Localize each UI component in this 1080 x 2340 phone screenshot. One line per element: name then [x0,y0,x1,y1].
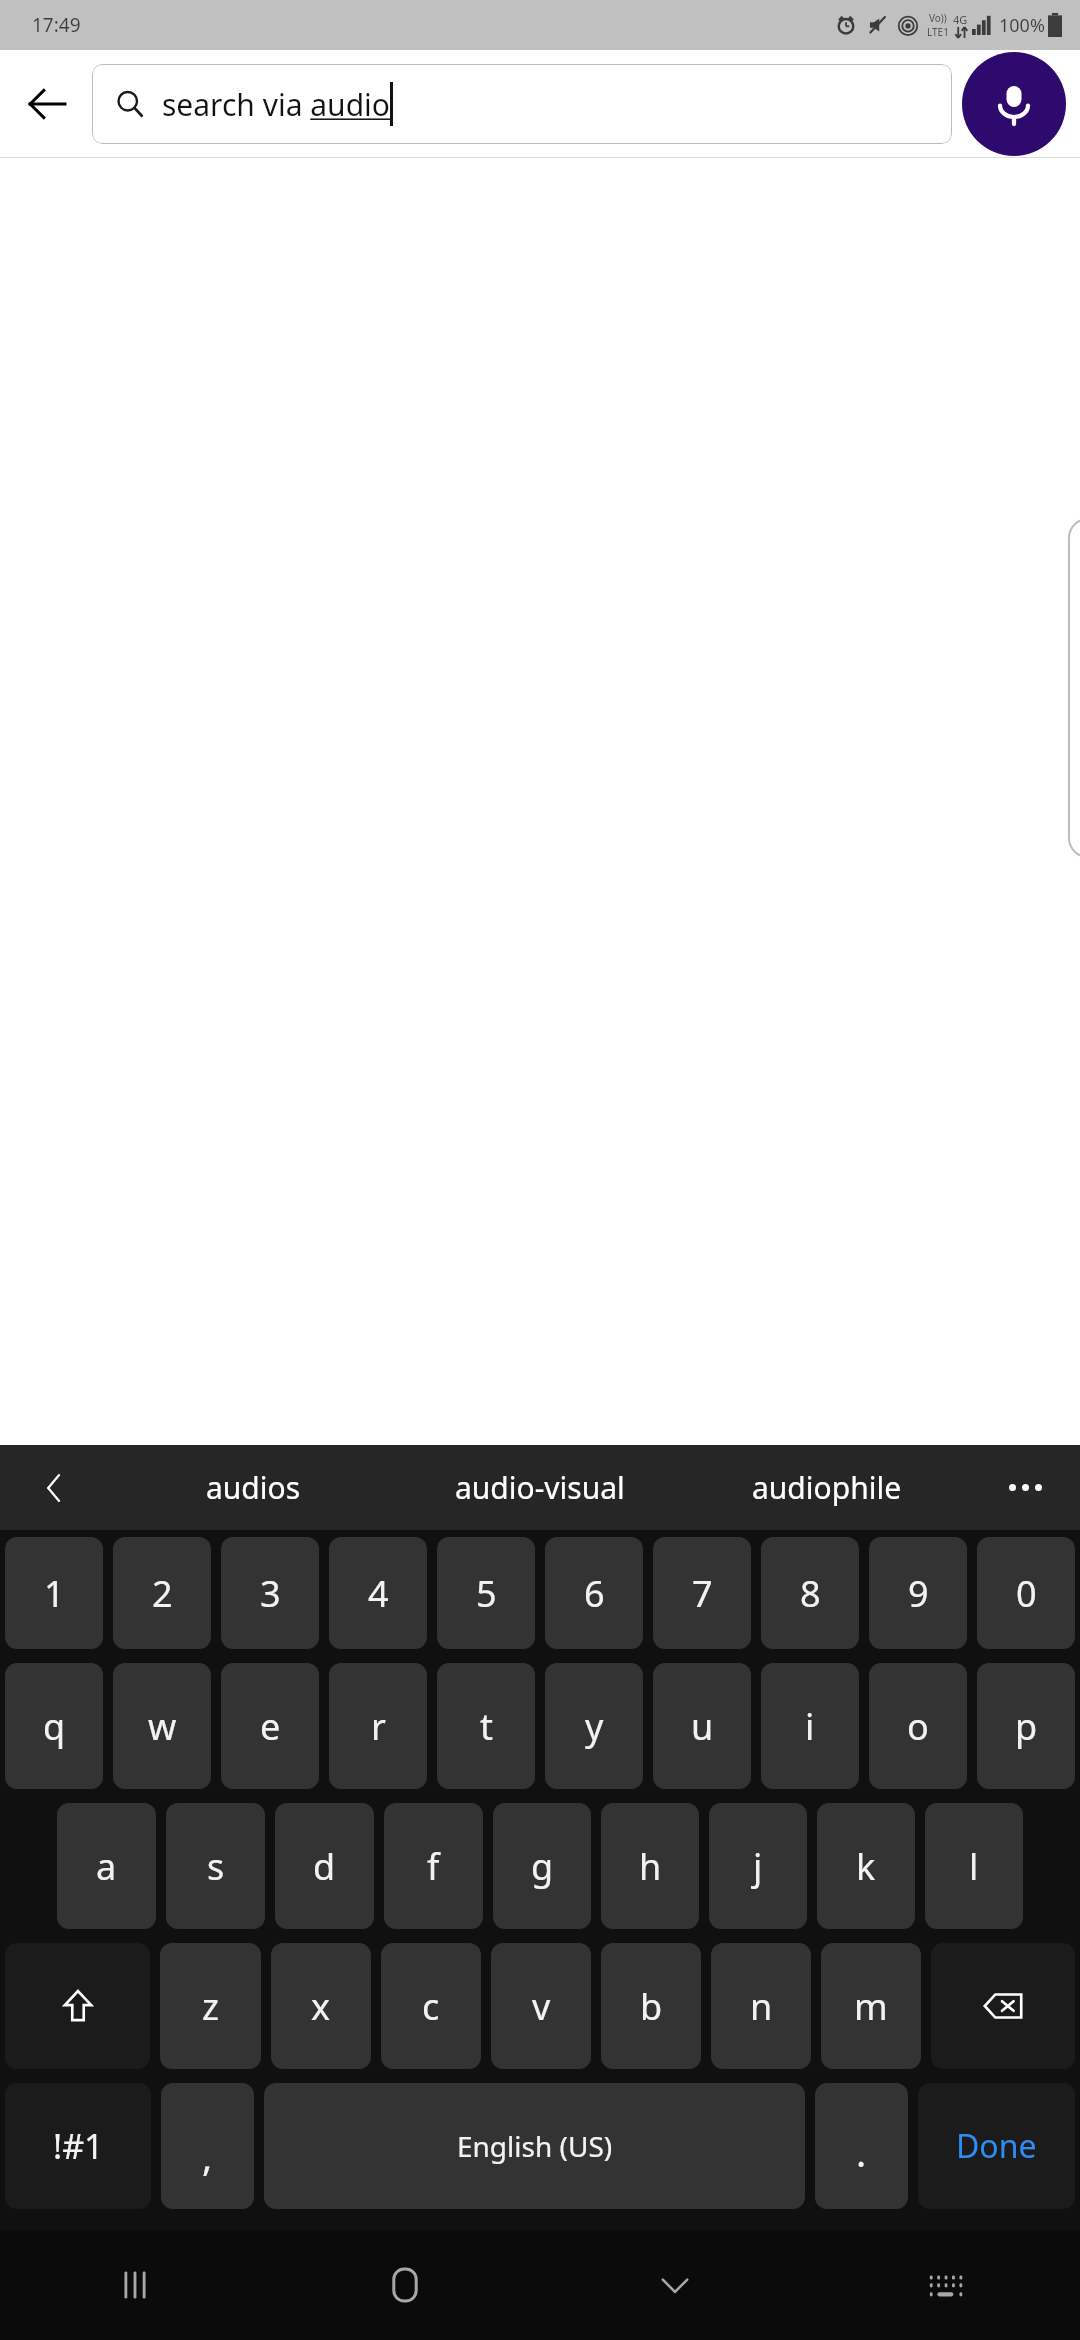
button[interactable]: 8 [761,1537,859,1649]
button[interactable]: m [821,1943,921,2069]
staticText: 6 [584,1569,605,1618]
staticText: p [1015,1702,1038,1751]
button[interactable]: j [709,1803,807,1929]
button[interactable]: f [384,1803,483,1929]
staticText: 1 [44,1569,65,1618]
staticText: LTE1 [927,25,949,39]
staticText: w [148,1702,177,1751]
staticText: h [639,1842,662,1891]
button[interactable]: g [493,1803,591,1929]
staticText: 8 [800,1569,821,1618]
button[interactable]: d [275,1803,374,1929]
staticText: 3 [260,1569,281,1618]
staticText: English (US) [457,2127,613,2165]
staticText: q [43,1702,66,1751]
button[interactable]: c [381,1943,481,2069]
staticText: m [854,1982,888,2031]
staticText: z [202,1982,219,2031]
staticText: 7 [692,1569,713,1618]
staticText: . [856,2126,867,2178]
button[interactable]: h [601,1803,699,1929]
staticText: v [532,1982,551,2031]
staticText: 17:49 [32,12,81,38]
staticText: 0 [1016,1569,1037,1618]
button[interactable]: 7 [653,1537,751,1649]
staticText: t [480,1702,493,1751]
staticText: u [691,1702,714,1751]
staticText: search via audio [162,84,390,125]
button[interactable]: 2 [113,1537,211,1649]
button[interactable]: 1 [5,1537,103,1649]
button[interactable]: s [166,1803,265,1929]
staticText: !#1 [53,2123,104,2169]
button[interactable]: q [5,1663,103,1789]
staticText: 4G [953,12,968,27]
button[interactable]: Change keyboard [810,2230,1080,2340]
button[interactable]: !#1 [5,2083,151,2209]
staticText: audios [206,1467,301,1508]
button[interactable]: e [221,1663,319,1789]
button[interactable]: Done [918,2083,1075,2209]
button[interactable]: Backspace [931,1943,1075,2069]
staticText: d [313,1842,336,1891]
button[interactable]: 0 [977,1537,1075,1649]
button[interactable]: . [815,2083,908,2209]
button[interactable]: More suggestions [970,1445,1080,1530]
button[interactable]: audiophile [683,1445,970,1530]
button[interactable]: v [491,1943,591,2069]
staticText: Vo)) [929,11,947,25]
button[interactable]: English (US) [264,2083,805,2209]
button[interactable]: , [161,2083,254,2209]
button[interactable]: a [57,1803,156,1929]
staticText: e [260,1702,281,1751]
staticText: i [805,1702,815,1751]
staticText: f [427,1842,440,1891]
staticText: audiophile [752,1467,902,1508]
button[interactable]: Hide keyboard [540,2230,810,2340]
staticText: b [640,1982,663,2031]
button[interactable]: t [437,1663,535,1789]
button[interactable]: audios [110,1445,396,1530]
staticText: g [531,1842,554,1891]
button[interactable]: z [160,1943,261,2069]
button[interactable] [1068,518,1080,858]
staticText: o [907,1702,929,1751]
button[interactable]: audio-visual [396,1445,683,1530]
button[interactable]: Voice search [962,52,1066,156]
button[interactable]: y [545,1663,643,1789]
button[interactable]: p [977,1663,1075,1789]
staticText: 4 [368,1569,389,1618]
button[interactable]: u [653,1663,751,1789]
staticText: x [311,1982,331,2031]
staticText: Done [956,2124,1037,2168]
button[interactable]: Recent apps [0,2230,270,2340]
staticText: , [202,2130,213,2182]
staticText: 9 [908,1569,929,1618]
staticText: audio-visual [455,1467,625,1508]
button[interactable]: 5 [437,1537,535,1649]
button[interactable]: Home [270,2230,540,2340]
button[interactable]: Previous suggestions [0,1445,110,1530]
button[interactable]: b [601,1943,701,2069]
button[interactable]: w [113,1663,211,1789]
button[interactable]: n [711,1943,811,2069]
button[interactable]: x [271,1943,371,2069]
button[interactable]: i [761,1663,859,1789]
button[interactable]: search via audio [92,64,952,144]
button[interactable]: r [329,1663,427,1789]
staticText: s [207,1842,225,1891]
button[interactable]: k [817,1803,915,1929]
button[interactable]: Shift [5,1943,150,2069]
button[interactable]: 4 [329,1537,427,1649]
staticText: a [96,1842,117,1891]
button[interactable]: 9 [869,1537,967,1649]
staticText: c [422,1982,440,2031]
button[interactable]: 3 [221,1537,319,1649]
button[interactable]: 6 [545,1537,643,1649]
staticText: j [753,1842,763,1891]
button[interactable]: Back [10,67,84,141]
button[interactable]: l [925,1803,1023,1929]
staticText: n [750,1982,773,2031]
staticText: 5 [476,1569,497,1618]
button[interactable]: o [869,1663,967,1789]
